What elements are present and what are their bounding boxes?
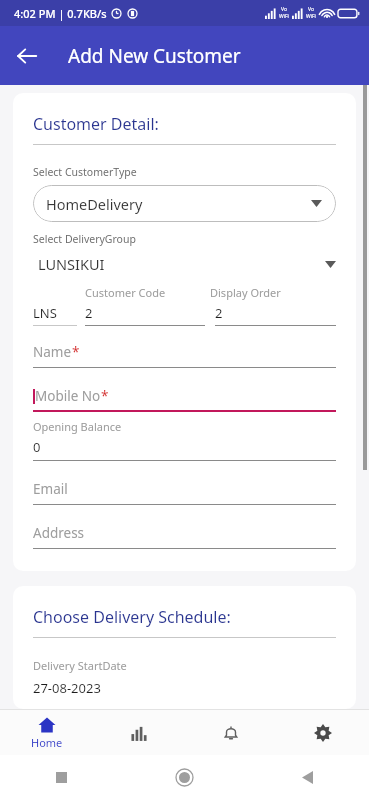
staticText: Address: [33, 524, 85, 542]
button[interactable]: Name: [33, 343, 336, 368]
staticText: Vo: [281, 6, 287, 13]
staticText: Mobile No: [35, 387, 101, 405]
button[interactable]: Opening Balance: [33, 419, 336, 461]
button[interactable]: HomeDelivery: [33, 185, 336, 222]
staticText: Customer Detail:: [33, 113, 159, 135]
button[interactable]: Address: [33, 524, 336, 549]
staticText: 27-08-2023: [33, 679, 101, 697]
staticText: Opening Balance: [33, 419, 122, 434]
staticText: Email: [33, 480, 68, 498]
button[interactable]: Back: [5, 34, 49, 78]
staticText: Customer Code: [85, 285, 210, 300]
staticText: *: [101, 387, 109, 405]
button[interactable]: Notifications: [185, 710, 277, 755]
staticText: 2: [215, 304, 223, 322]
button[interactable]: Reports: [93, 710, 185, 755]
staticText: 4:02 PM | 0.7KB/s: [14, 6, 107, 21]
staticText: Select DeliveryGroup: [33, 232, 136, 246]
button[interactable]: Email: [33, 480, 336, 505]
button[interactable]: Home: [123, 755, 246, 800]
staticText: Name: [33, 343, 72, 361]
button[interactable]: Settings: [277, 710, 369, 755]
staticText: HomeDelivery: [46, 194, 143, 214]
staticText: WiFi: [306, 13, 316, 20]
button[interactable]: Recents: [0, 755, 123, 800]
button[interactable]: Mobile No: [33, 387, 336, 412]
staticText: 2: [85, 304, 93, 322]
button[interactable]: LUNSIKUI: [33, 249, 336, 279]
staticText: Select CustomerType: [33, 165, 137, 179]
button[interactable]: Back: [246, 755, 369, 800]
staticText: Choose Delivery Schedule:: [33, 606, 231, 628]
button[interactable]: Home: [0, 710, 93, 755]
staticText: Display Order: [210, 285, 336, 300]
staticText: LNS: [33, 304, 57, 322]
staticText: Add New Customer: [68, 43, 241, 69]
staticText: LUNSIKUI: [38, 254, 105, 274]
staticText: Delivery StartDate: [33, 658, 127, 673]
staticText: WiFi: [279, 13, 289, 20]
staticText: 0: [33, 438, 41, 456]
staticText: *: [72, 343, 80, 361]
staticText: Home: [31, 735, 63, 750]
staticText: Vo: [308, 6, 314, 13]
